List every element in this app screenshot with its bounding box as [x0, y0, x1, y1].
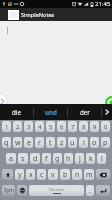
button[interactable]: SimpleNotes	[0, 8, 112, 21]
staticText: b	[63, 170, 68, 180]
staticText: m	[86, 170, 93, 180]
staticText: a	[9, 154, 13, 164]
staticText: z	[60, 138, 64, 148]
button[interactable]: der	[68, 104, 101, 120]
button[interactable]: v	[48, 169, 58, 180]
button[interactable]: h	[64, 153, 73, 164]
button[interactable]: .	[86, 185, 94, 196]
staticText: 5	[49, 123, 53, 131]
staticText: 9	[93, 123, 97, 131]
button[interactable]: e	[24, 137, 33, 148]
button[interactable]: b	[60, 169, 70, 180]
button[interactable]: w	[13, 137, 22, 148]
button[interactable]: z	[57, 137, 66, 148]
staticText: l	[101, 154, 103, 164]
staticText: j	[79, 154, 81, 164]
staticText: t	[49, 138, 52, 148]
button[interactable]: die	[0, 104, 33, 120]
staticText: .	[89, 186, 91, 196]
button[interactable]: i	[79, 137, 88, 148]
staticText: d	[33, 154, 38, 164]
button[interactable]: u	[68, 137, 77, 148]
staticText: die	[12, 108, 21, 116]
staticText: 21:45	[95, 0, 111, 8]
staticText: k	[89, 154, 93, 164]
staticText: s	[21, 154, 25, 164]
staticText: 7	[71, 123, 75, 131]
staticText: v	[51, 170, 55, 180]
button[interactable]: 7	[68, 121, 77, 132]
staticText: r	[38, 138, 41, 148]
staticText: 1	[5, 123, 9, 131]
button[interactable]: r	[35, 137, 44, 148]
button[interactable]: 1	[2, 121, 11, 132]
staticText: Deutsch	[49, 187, 65, 192]
button[interactable]: 0	[101, 121, 110, 132]
staticText: y	[18, 170, 22, 180]
button[interactable]: d	[30, 153, 40, 164]
button[interactable]: x	[26, 169, 35, 180]
staticText: e	[27, 138, 31, 148]
button[interactable]: a	[6, 153, 16, 164]
button[interactable]: 8	[79, 121, 88, 132]
button[interactable]: k	[86, 153, 95, 164]
button[interactable]: t	[46, 137, 55, 148]
button[interactable]	[2, 169, 13, 180]
staticText: p	[103, 138, 108, 148]
button[interactable]: Deutsch	[29, 185, 84, 196]
button[interactable]: 5	[46, 121, 55, 132]
button[interactable]: More suggestions	[102, 104, 112, 120]
staticText: u	[70, 138, 75, 148]
button[interactable]: 6	[57, 121, 66, 132]
staticText: Sym	[4, 187, 14, 194]
button[interactable]: Next	[0, 93, 8, 110]
button[interactable]: p	[101, 137, 110, 148]
staticText: n	[75, 170, 80, 180]
button[interactable]: g	[53, 153, 62, 164]
button[interactable]	[96, 169, 110, 180]
button[interactable]	[17, 185, 27, 196]
staticText: g	[55, 154, 60, 164]
button[interactable]: l	[97, 153, 106, 164]
button[interactable]: 9	[90, 121, 99, 132]
button[interactable]: n	[72, 169, 82, 180]
staticText: h	[66, 154, 71, 164]
button[interactable]: s	[18, 153, 28, 164]
button[interactable]: Record	[105, 96, 112, 109]
staticText: 6	[60, 123, 64, 131]
staticText: und	[45, 108, 57, 116]
button[interactable]: 3	[24, 121, 33, 132]
button[interactable]: und	[34, 104, 67, 120]
staticText: c	[40, 170, 44, 180]
staticText: w	[15, 138, 21, 148]
button[interactable]: q	[2, 137, 11, 148]
staticText: q	[4, 138, 9, 148]
staticText: f	[45, 154, 48, 164]
staticText: i	[83, 138, 85, 148]
button[interactable]: Sym	[2, 185, 15, 196]
staticText: x	[29, 170, 33, 180]
button[interactable]: 2	[13, 121, 22, 132]
staticText: 8	[82, 123, 86, 131]
button[interactable]: o	[90, 137, 99, 148]
button[interactable]: 4	[35, 121, 44, 132]
button[interactable]	[96, 185, 110, 196]
button[interactable]: c	[37, 169, 46, 180]
button[interactable]: j	[75, 153, 84, 164]
staticText: 3	[27, 123, 31, 131]
button[interactable]: f	[42, 153, 51, 164]
staticText: 4	[38, 123, 42, 131]
staticText: o	[92, 138, 97, 148]
button[interactable]: y	[15, 169, 24, 180]
staticText: der	[80, 108, 90, 116]
button[interactable]: m	[84, 169, 94, 180]
staticText: SimpleNotes	[21, 11, 55, 19]
staticText: 2	[16, 123, 20, 131]
staticText: 0	[104, 123, 108, 131]
